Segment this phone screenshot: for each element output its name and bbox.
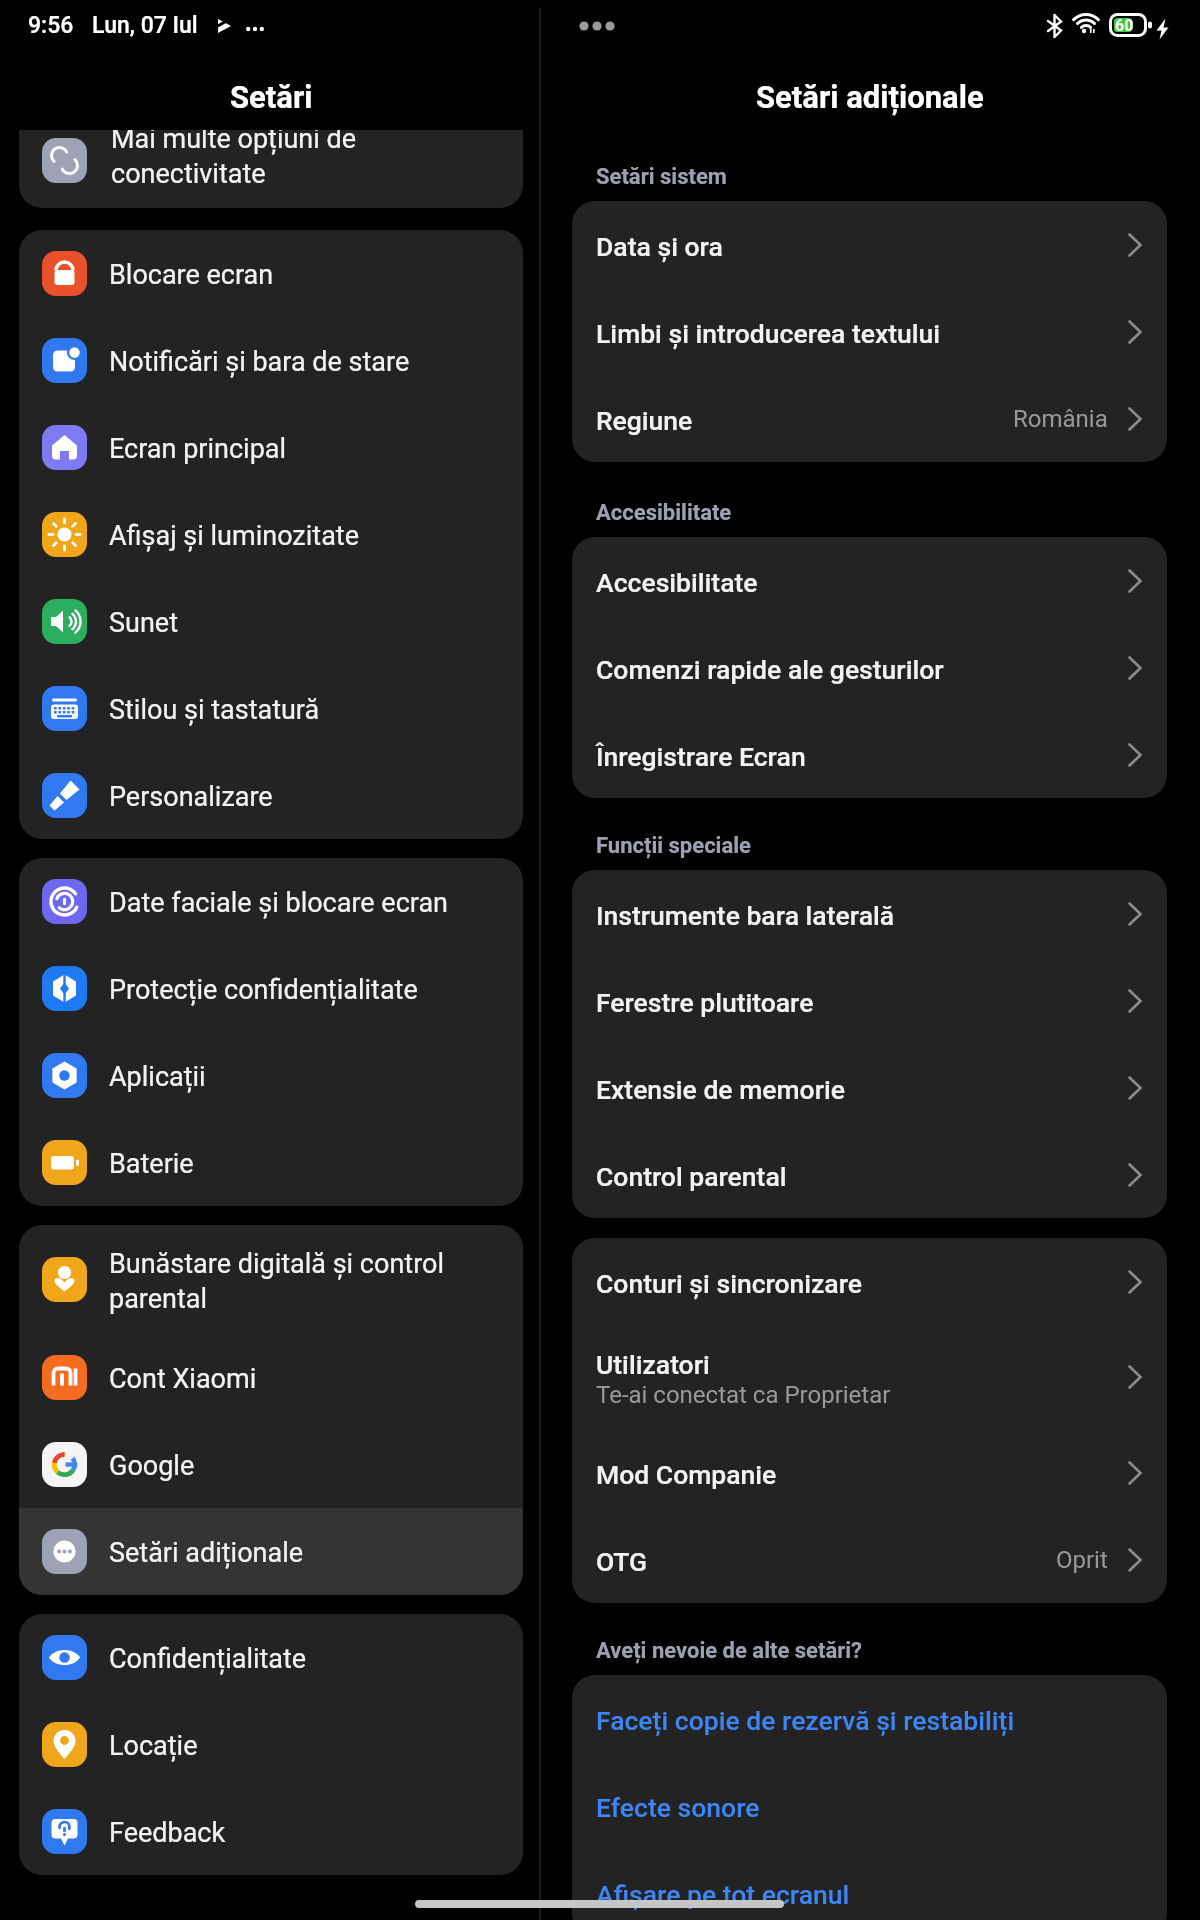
button[interactable]: Sunet	[19, 578, 523, 665]
staticText: Control parental	[596, 1161, 787, 1192]
staticText: Funcții speciale	[596, 833, 751, 859]
button[interactable]: Personalizare	[19, 752, 523, 839]
button[interactable]: Feedback	[19, 1788, 523, 1875]
staticText: Ferestre plutitoare	[596, 987, 814, 1018]
button[interactable]: Blocare ecran	[19, 230, 523, 317]
staticText: Protecție confidențialitate	[109, 974, 509, 1006]
button[interactable]: Bunăstare digitală și control parental	[19, 1225, 523, 1334]
staticText: Baterie	[109, 1148, 509, 1180]
button[interactable]: Stilou și tastatură	[19, 665, 523, 752]
staticText: Aplicații	[109, 1061, 509, 1093]
button[interactable]: More options	[577, 6, 617, 46]
staticText: Faceți copie de rezervă și restabiliți	[596, 1705, 1015, 1736]
button[interactable]: Mai multe opțiuni de conectivitate	[19, 130, 523, 199]
staticText: Date faciale și blocare ecran	[109, 887, 509, 919]
staticText: Personalizare	[109, 781, 509, 813]
staticText: 60	[1115, 16, 1134, 35]
button[interactable]: Locație	[19, 1701, 523, 1788]
button[interactable]: Protecție confidențialitate	[19, 945, 523, 1032]
staticText: Înregistrare Ecran	[596, 741, 806, 772]
button[interactable]: Baterie	[19, 1119, 523, 1206]
staticText: Setări sistem	[596, 164, 727, 190]
button[interactable]: Date faciale și blocare ecran	[19, 858, 523, 945]
button[interactable]: Comenzi rapide ale gesturilor	[572, 624, 1167, 711]
staticText: OTG	[596, 1546, 647, 1577]
staticText: Afișaj și luminozitate	[109, 520, 509, 552]
staticText: Bunăstare digitală și control parental	[109, 1248, 509, 1314]
staticText: Comenzi rapide ale gesturilor	[596, 654, 944, 685]
button[interactable]: Aplicații	[19, 1032, 523, 1119]
button[interactable]: Cont Xiaomi	[19, 1334, 523, 1421]
button[interactable]: Ferestre plutitoare	[572, 957, 1167, 1044]
staticText: Blocare ecran	[109, 259, 509, 291]
staticText: Sunet	[109, 607, 509, 639]
button[interactable]: Mod Companie	[572, 1429, 1167, 1516]
staticText: 9:56	[28, 12, 74, 39]
button[interactable]: Afișaj și luminozitate	[19, 491, 523, 578]
staticText: Ecran principal	[109, 433, 509, 465]
button[interactable]: Setări adiționale	[19, 1508, 523, 1595]
staticText: Regiune	[596, 405, 693, 436]
button[interactable]: Utilizatori	[572, 1325, 1167, 1429]
staticText: Locație	[109, 1730, 509, 1762]
staticText: Google	[109, 1450, 509, 1482]
button[interactable]: Conturi și sincronizare	[572, 1238, 1167, 1325]
button[interactable]: Regiune	[572, 375, 1167, 462]
staticText: Stilou și tastatură	[109, 694, 509, 726]
button[interactable]: Afișare pe tot ecranul	[572, 1849, 1167, 1920]
button[interactable]: Confidențialitate	[19, 1614, 523, 1701]
staticText: Setări adiționale	[109, 1537, 509, 1569]
staticText: Mod Companie	[596, 1459, 777, 1490]
staticText: Utilizatori	[596, 1349, 710, 1380]
staticText: Afișare pe tot ecranul	[596, 1879, 850, 1910]
button[interactable]: Limbi și introducerea textului	[572, 288, 1167, 375]
staticText: Accesibilitate	[596, 567, 758, 598]
button[interactable]: Notificări și bara de stare	[19, 317, 523, 404]
button[interactable]: Control parental	[572, 1131, 1167, 1218]
staticText: Conturi și sincronizare	[596, 1268, 862, 1299]
staticText: Oprit	[1056, 1546, 1108, 1574]
staticText: Extensie de memorie	[596, 1074, 845, 1105]
staticText: Lun, 07 Iul	[92, 12, 198, 39]
button[interactable]: Faceți copie de rezervă și restabiliți	[572, 1675, 1167, 1762]
staticText: Mai multe opțiuni de conectivitate	[111, 130, 481, 189]
staticText: Efecte sonore	[596, 1792, 760, 1823]
staticText: Limbi și introducerea textului	[596, 318, 941, 349]
staticText: Confidențialitate	[109, 1643, 509, 1675]
button[interactable]: Data și ora	[572, 201, 1167, 288]
button[interactable]: Ecran principal	[19, 404, 523, 491]
staticText: Cont Xiaomi	[109, 1363, 509, 1395]
staticText: România	[1013, 405, 1108, 433]
button[interactable]: Instrumente bara laterală	[572, 870, 1167, 957]
staticText: Aveți nevoie de alte setări?	[596, 1638, 863, 1664]
staticText: Notificări și bara de stare	[109, 346, 509, 378]
staticText: Data și ora	[596, 231, 723, 262]
staticText: Accesibilitate	[596, 500, 732, 526]
staticText: Instrumente bara laterală	[596, 900, 895, 931]
button[interactable]: Accesibilitate	[572, 537, 1167, 624]
staticText: Setări adiționale	[756, 79, 984, 115]
button[interactable]: Efecte sonore	[572, 1762, 1167, 1849]
staticText: Setări	[230, 79, 313, 115]
staticText: Te-ai conectat ca Proprietar	[596, 1381, 891, 1409]
button[interactable]: Extensie de memorie	[572, 1044, 1167, 1131]
button[interactable]: Google	[19, 1421, 523, 1508]
staticText: Feedback	[109, 1817, 509, 1849]
button[interactable]: Înregistrare Ecran	[572, 711, 1167, 798]
button[interactable]: OTG	[572, 1516, 1167, 1603]
